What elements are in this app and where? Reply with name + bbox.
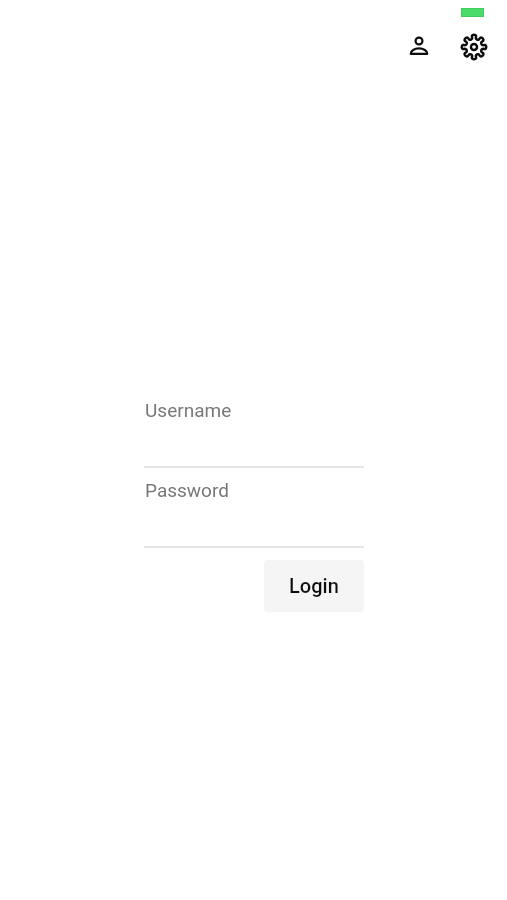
button[interactable]: Settings [452,25,496,69]
button[interactable]: Password [144,463,364,547]
staticText: Password [145,479,229,501]
button[interactable]: Username [144,383,364,467]
button[interactable]: Login [264,560,364,612]
staticText: Username [145,399,232,421]
button[interactable]: Account [397,24,441,68]
staticText: Login [289,574,339,597]
